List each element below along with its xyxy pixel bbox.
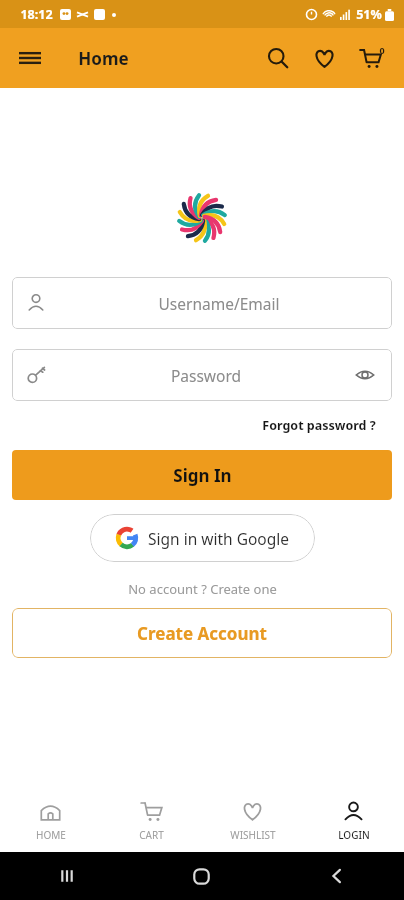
staticText: No account ? Create one [128, 580, 277, 598]
staticText: Home [78, 47, 129, 70]
button[interactable]: Wishlist [304, 38, 344, 78]
button[interactable]: HOME [0, 790, 101, 852]
staticText: HOME [36, 828, 66, 842]
staticText: 0 [379, 44, 385, 56]
staticText: 51% [356, 6, 382, 23]
button[interactable]: Sign in with Google [90, 514, 315, 562]
button[interactable]: Forgot password ? [258, 413, 380, 438]
staticText: CART [139, 828, 164, 842]
button[interactable]: CART [101, 790, 202, 852]
button[interactable]: Recent apps [0, 852, 134, 900]
staticText: Username/Email [60, 293, 378, 314]
button[interactable]: WISHLIST [202, 790, 303, 852]
staticText: WISHLIST [230, 828, 276, 842]
button[interactable]: Sign In [12, 450, 392, 500]
button[interactable]: Cart, 0 items [350, 38, 390, 78]
staticText: LOGIN [338, 828, 370, 842]
staticText: Sign In [173, 464, 232, 487]
button[interactable]: Username/Email [12, 277, 392, 329]
button[interactable]: LOGIN [303, 790, 404, 852]
button[interactable]: Search [258, 38, 298, 78]
staticText: Create Account [137, 622, 267, 645]
staticText: 18:12 [20, 6, 53, 23]
staticText: Sign in with Google [148, 528, 289, 549]
button[interactable]: Home [134, 852, 269, 900]
button[interactable]: Back [269, 852, 404, 900]
button[interactable]: Password [12, 349, 392, 401]
staticText: Password [60, 365, 352, 386]
button[interactable]: Show password [352, 362, 378, 388]
button[interactable]: Menu [10, 38, 50, 78]
button[interactable]: Create Account [12, 608, 392, 658]
